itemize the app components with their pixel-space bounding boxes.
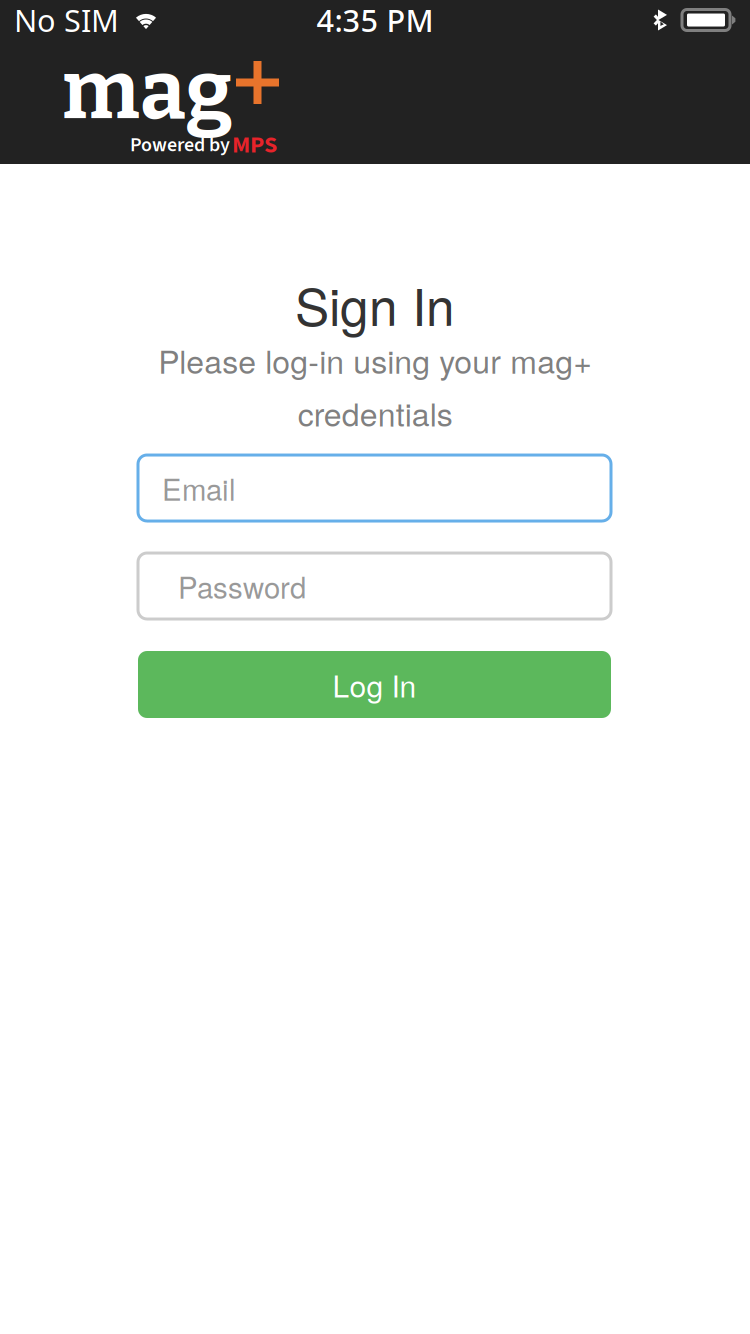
staticText: MPS (232, 128, 277, 162)
staticText: Powered by (130, 131, 230, 159)
button[interactable]: Email (138, 455, 611, 521)
staticText: Password (178, 565, 306, 607)
staticText: mag (62, 42, 233, 140)
button[interactable]: Log In (138, 651, 611, 718)
staticText: 4:35 PM (316, 0, 433, 40)
staticText: Log In (332, 663, 416, 706)
button[interactable]: Password (138, 553, 611, 619)
staticText: Email (162, 467, 236, 509)
staticText: Please log-in using your mag+ credential… (158, 337, 592, 436)
staticText: No SIM (14, 0, 119, 40)
staticText: Sign In (295, 267, 455, 340)
